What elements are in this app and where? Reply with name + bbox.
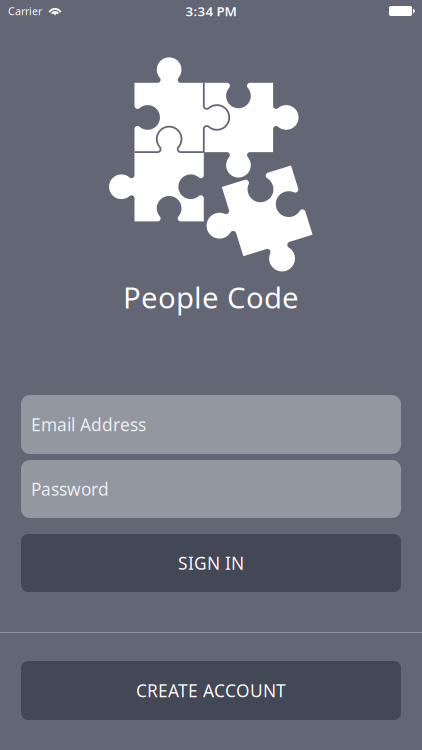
button[interactable]: SIGN IN	[21, 534, 401, 592]
staticText: CREATE ACCOUNT	[136, 679, 286, 702]
staticText: SIGN IN	[178, 551, 244, 574]
staticText: Password	[31, 477, 109, 500]
staticText: Carrier	[8, 4, 42, 18]
staticText: People Code	[123, 277, 299, 316]
staticText: Email Address	[31, 413, 146, 436]
button[interactable]: Password	[21, 460, 401, 518]
button[interactable]: CREATE ACCOUNT	[21, 661, 401, 720]
staticText: 3:34 PM	[185, 2, 236, 20]
button[interactable]: Email Address	[21, 395, 401, 454]
